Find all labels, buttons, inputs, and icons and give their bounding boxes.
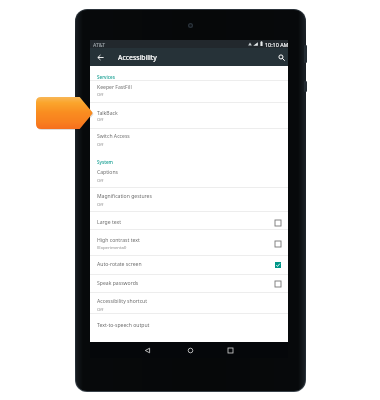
staticText: Accessibility shortcut xyxy=(97,298,148,305)
button[interactable] xyxy=(90,292,288,313)
staticText: Speak passwords xyxy=(97,280,139,287)
staticText: Off xyxy=(97,306,104,312)
button[interactable]: Unchecked xyxy=(274,240,282,248)
button[interactable]: Unchecked xyxy=(274,280,282,288)
button[interactable] xyxy=(90,255,288,274)
staticText: Services xyxy=(97,74,115,80)
button[interactable]: Back xyxy=(94,51,107,64)
button[interactable] xyxy=(90,274,288,292)
button[interactable] xyxy=(90,211,288,229)
staticText: Captions xyxy=(97,169,119,176)
button[interactable] xyxy=(90,128,288,150)
staticText: TalkBack xyxy=(97,110,118,117)
staticText: 10:10 AM xyxy=(265,41,289,48)
staticText: Large text xyxy=(97,219,122,226)
staticText: Switch Access xyxy=(97,133,130,140)
button[interactable]: Search xyxy=(274,50,288,64)
button[interactable] xyxy=(90,313,288,338)
staticText: Off xyxy=(97,141,104,147)
staticText: Accessibility xyxy=(118,53,157,62)
button[interactable] xyxy=(90,229,288,255)
button[interactable] xyxy=(90,102,288,128)
staticText: Off xyxy=(97,177,104,183)
staticText: Magnification gestures xyxy=(97,193,152,200)
staticText: System xyxy=(97,159,113,165)
staticText: Keeper FastFill xyxy=(97,84,132,91)
button[interactable]: Recent apps xyxy=(223,343,237,357)
staticText: Off xyxy=(97,91,104,97)
button[interactable] xyxy=(90,187,288,211)
button[interactable]: Back xyxy=(140,343,154,357)
button[interactable]: Home xyxy=(183,343,197,357)
button[interactable] xyxy=(90,158,288,187)
staticText: Off xyxy=(97,201,104,207)
staticText: AT&T xyxy=(93,41,106,48)
staticText: High contrast text xyxy=(97,237,140,244)
staticText: Text-to-speech output xyxy=(97,322,150,329)
staticText: Auto-rotate screen xyxy=(97,261,142,268)
button[interactable] xyxy=(90,76,288,102)
staticText: Off xyxy=(97,116,104,122)
staticText: (Experimental) xyxy=(97,244,127,250)
button[interactable]: Unchecked xyxy=(274,219,282,227)
button[interactable]: Checked xyxy=(274,261,282,269)
